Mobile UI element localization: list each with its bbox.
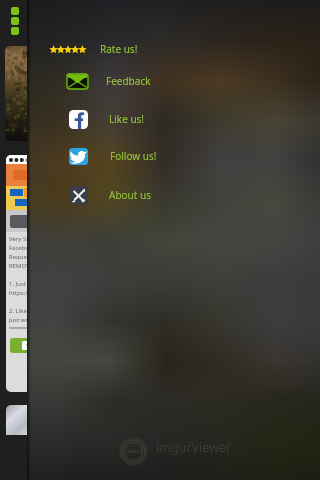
button[interactable]: More options bbox=[2, 0, 28, 42]
staticText: imgurViewer bbox=[156, 439, 232, 456]
staticText: Very Simple App to Facebook Page and Req… bbox=[9, 235, 27, 327]
button[interactable]: Follow us! bbox=[44, 140, 164, 172]
button[interactable]: Like us! bbox=[44, 103, 164, 135]
staticText: Follow us! bbox=[110, 149, 157, 163]
button[interactable]: About us bbox=[44, 179, 164, 211]
staticText: Like us! bbox=[109, 112, 145, 126]
staticText: Rate us! bbox=[100, 42, 138, 56]
button[interactable]: Feedback bbox=[44, 65, 164, 97]
staticText: Feedback bbox=[106, 74, 151, 88]
button[interactable]: SIMPLE bbox=[118, 436, 149, 467]
staticText: About us bbox=[109, 188, 151, 202]
button[interactable]: Rate us! bbox=[44, 33, 164, 65]
button[interactable]: imgurViewer bbox=[156, 439, 232, 456]
staticText: SIMPLE bbox=[127, 449, 141, 454]
